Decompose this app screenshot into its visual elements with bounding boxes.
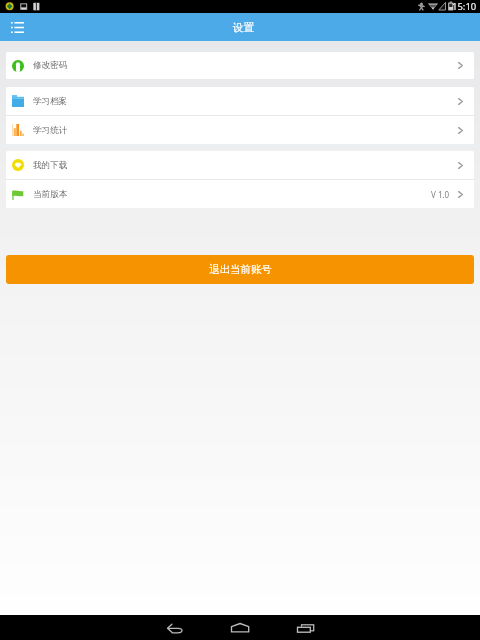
button[interactable]: 修改密码: [6, 52, 474, 79]
staticText: V 1.0: [431, 189, 450, 200]
button[interactable]: Recents: [275, 615, 335, 640]
staticText: 当前版本: [33, 189, 68, 200]
staticText: 学习档案: [33, 96, 68, 107]
staticText: 退出当前账号: [209, 263, 272, 276]
staticText: 修改密码: [33, 60, 68, 71]
staticText: 学习统计: [33, 125, 68, 136]
staticText: 15:10: [452, 0, 477, 13]
button[interactable]: Back: [145, 615, 205, 640]
staticText: 我的下载: [33, 160, 68, 171]
button[interactable]: 学习档案: [6, 87, 474, 115]
button[interactable]: 退出当前账号: [6, 255, 474, 284]
button[interactable]: 我的下载: [6, 151, 474, 179]
button[interactable]: 当前版本: [6, 180, 474, 208]
button[interactable]: 学习统计: [6, 116, 474, 144]
staticText: 设置: [233, 21, 254, 34]
button[interactable]: Home: [210, 615, 270, 640]
button[interactable]: Menu: [0, 13, 34, 41]
